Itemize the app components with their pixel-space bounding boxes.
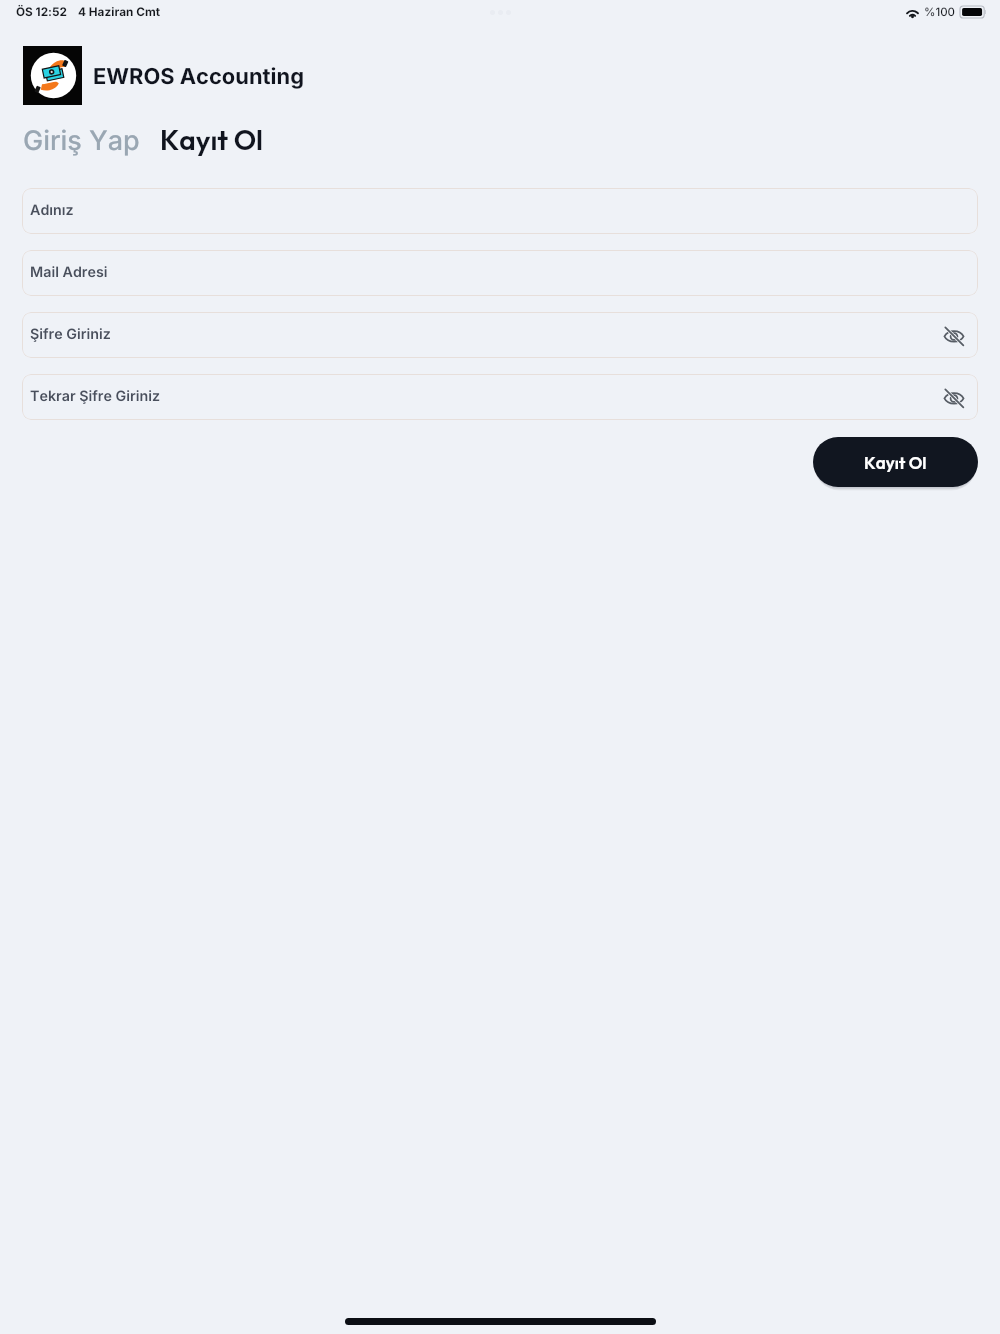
staticText: %100 — [924, 5, 956, 19]
button[interactable]: Adınız — [22, 188, 978, 234]
staticText: Şifre Giriniz — [30, 325, 111, 342]
staticText: Tekrar Şifre Giriniz — [30, 387, 160, 404]
button[interactable]: Mail Adresi — [22, 250, 978, 296]
staticText: ÖS 12:52 — [16, 5, 68, 19]
button[interactable]: Show password — [939, 382, 969, 412]
staticText: Kayıt Ol — [864, 452, 927, 473]
staticText: Giriş Yap — [23, 124, 140, 157]
button[interactable]: Kayıt Ol — [160, 122, 264, 157]
button[interactable]: EWROS logo — [23, 46, 82, 105]
staticText: EWROS Accounting — [93, 63, 304, 89]
button[interactable]: Kayıt Ol — [813, 437, 978, 487]
staticText: Adınız — [30, 201, 74, 218]
button[interactable]: Tekrar Şifre Giriniz — [22, 374, 978, 420]
staticText: 4 Haziran Cmt — [78, 5, 160, 19]
staticText: Mail Adresi — [30, 263, 108, 280]
button[interactable]: Şifre Giriniz — [22, 312, 978, 358]
button[interactable]: Giriş Yap — [23, 124, 140, 157]
staticText: Kayıt Ol — [160, 122, 264, 157]
button[interactable]: Show password — [939, 320, 969, 350]
